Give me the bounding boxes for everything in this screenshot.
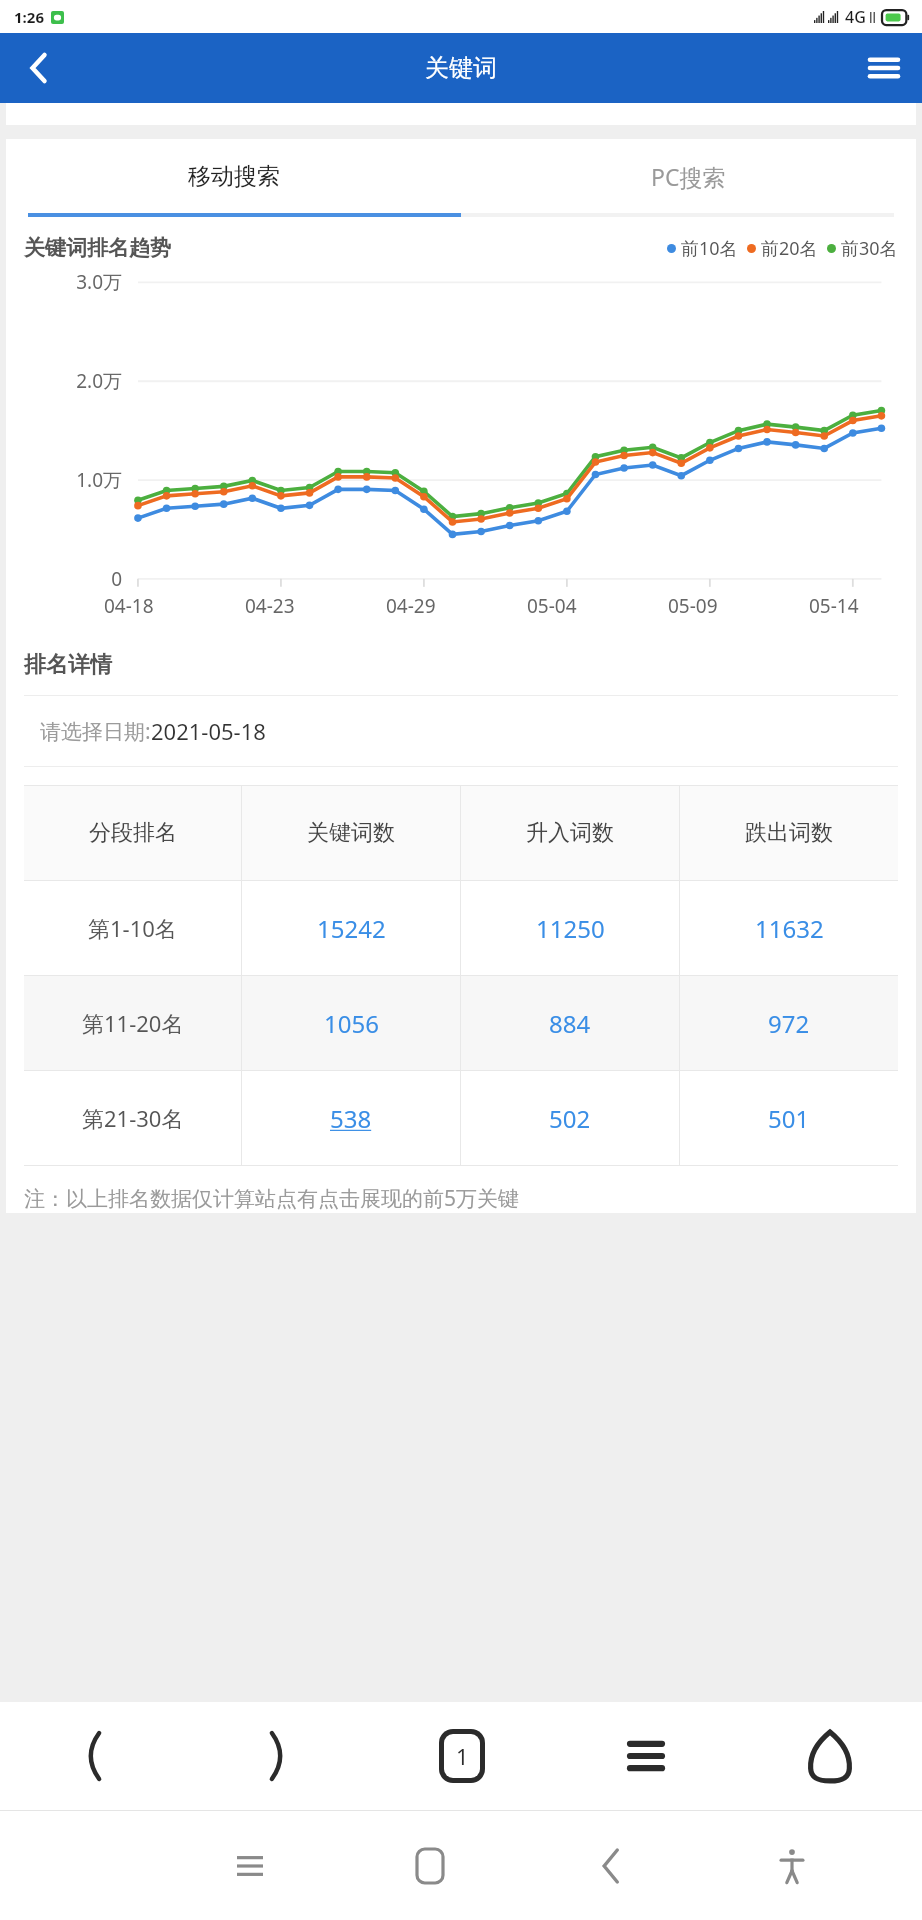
staticText: 1.0万: [6, 467, 122, 493]
staticText: 501: [768, 1102, 810, 1135]
button[interactable]: Menu: [856, 40, 912, 96]
staticText: 前20名: [761, 236, 818, 261]
button[interactable]: Accessibility: [701, 1811, 882, 1920]
staticText: 2021-05-18: [151, 716, 266, 746]
button[interactable]: 538: [242, 1071, 460, 1165]
staticText: 05-04: [527, 593, 577, 619]
staticText: 关键词数: [307, 819, 395, 847]
button[interactable]: Home: [738, 1702, 922, 1810]
button[interactable]: 移动搜索: [6, 139, 461, 213]
staticText: 分段排名: [89, 819, 177, 847]
staticText: 关键词: [425, 53, 497, 83]
staticText: 移动搜索: [188, 162, 280, 191]
button[interactable]: Recents: [160, 1811, 340, 1920]
button[interactable]: Back: [520, 1811, 701, 1920]
staticText: 请选择日期:: [40, 717, 151, 746]
button[interactable]: Forward: [185, 1702, 370, 1810]
staticText: 前30名: [841, 236, 898, 261]
button[interactable]: Home: [340, 1811, 520, 1920]
button[interactable]: 第11-20名: [24, 976, 241, 1070]
staticText: 884: [549, 1007, 591, 1040]
button[interactable]: 11632: [680, 881, 898, 975]
button[interactable]: 跌出词数: [680, 786, 898, 880]
staticText: 05-14: [809, 593, 859, 619]
staticText: 3.0万: [6, 269, 122, 295]
staticText: 538: [330, 1102, 372, 1135]
staticText: 11632: [755, 912, 824, 945]
button[interactable]: 第21-30名: [24, 1071, 241, 1165]
button[interactable]: 升入词数: [461, 786, 679, 880]
button[interactable]: 972: [680, 976, 898, 1070]
staticText: 前10名: [681, 236, 738, 261]
staticText: 4G: [845, 6, 866, 28]
staticText: 05-09: [668, 593, 718, 619]
staticText: 排名详情: [24, 651, 112, 679]
staticText: 1:26: [14, 7, 44, 27]
staticText: 15242: [317, 912, 386, 945]
button[interactable]: 分段排名: [24, 786, 241, 880]
staticText: 04-23: [245, 593, 295, 619]
staticText: PC搜索: [651, 161, 726, 192]
staticText: 04-29: [386, 593, 436, 619]
button[interactable]: 请选择日期:: [24, 696, 898, 766]
button[interactable]: 1056: [242, 976, 460, 1070]
staticText: 04-18: [104, 593, 154, 619]
button[interactable]: 15242: [242, 881, 460, 975]
staticText: 1056: [324, 1007, 379, 1040]
button[interactable]: 884: [461, 976, 679, 1070]
button[interactable]: 502: [461, 1071, 679, 1165]
staticText: 第1-10名: [88, 913, 177, 943]
staticText: 升入词数: [526, 819, 614, 847]
button[interactable]: 501: [680, 1071, 898, 1165]
button[interactable]: Back: [10, 40, 66, 96]
button[interactable]: Menu: [554, 1702, 738, 1810]
staticText: 第21-30名: [82, 1103, 184, 1133]
button[interactable]: Back: [0, 1702, 185, 1810]
staticText: 注：以上排名数据仅计算站点有点击展现的前5万关键: [24, 1184, 520, 1213]
staticText: 972: [768, 1007, 810, 1040]
staticText: 关键词排名趋势: [24, 235, 171, 261]
staticText: 第11-20名: [82, 1008, 184, 1038]
button[interactable]: PC搜索: [461, 139, 916, 213]
staticText: 0: [6, 566, 122, 592]
staticText: 跌出词数: [745, 819, 833, 847]
staticText: 1: [456, 1741, 469, 1771]
staticText: 2.0万: [6, 368, 122, 394]
button[interactable]: 关键词数: [242, 786, 460, 880]
staticText: 502: [549, 1102, 591, 1135]
button[interactable]: 第1-10名: [24, 881, 241, 975]
button[interactable]: 11250: [461, 881, 679, 975]
staticText: 11250: [536, 912, 605, 945]
button[interactable]: Tabs: [370, 1702, 554, 1810]
